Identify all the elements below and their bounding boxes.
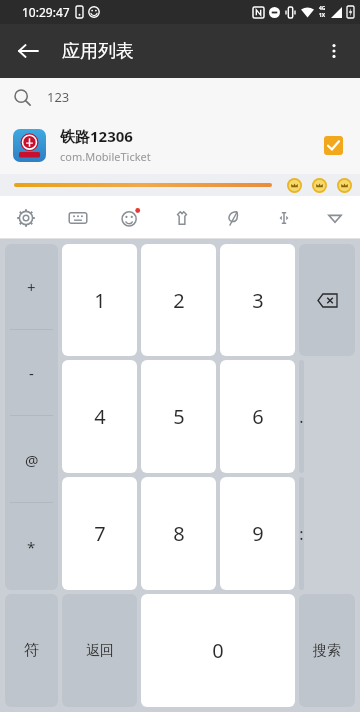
button[interactable]: Coin [337,178,352,193]
button[interactable]: Selected [318,130,348,160]
button[interactable]: : [299,477,304,590]
staticText: 0 [212,637,224,664]
button[interactable]: Theme [156,196,207,239]
staticText: 6 [252,403,264,430]
staticText: 123 [47,88,70,106]
button[interactable]: 符 [5,594,58,707]
button[interactable]: Coin [287,178,302,193]
button[interactable]: 9 [220,477,295,590]
staticText: 1X [319,12,326,19]
staticText: 5 [173,403,185,430]
button[interactable]: Backspace [299,244,355,356]
staticText: 7 [94,520,106,547]
staticText: 2 [173,287,185,314]
button[interactable]: 0 [141,594,295,707]
button[interactable]: Settings [0,196,52,239]
button[interactable]: Handwriting [207,196,258,239]
staticText: 8 [173,520,185,547]
staticText: 9 [252,520,264,547]
staticText: 4 [94,403,106,430]
button[interactable]: 3 [220,244,295,356]
button[interactable]: Coin [312,178,327,193]
button[interactable]: 123 [0,78,360,116]
button[interactable]: 返回 [62,594,137,707]
staticText: 搜索 [313,642,341,660]
button[interactable]: Emoji [104,196,156,239]
staticText: - [29,363,34,383]
button[interactable]: More options [312,29,356,73]
button[interactable]: Keyboard [52,196,104,239]
button[interactable]: 2 [141,244,216,356]
staticText: 符 [24,641,39,660]
button[interactable]: Collapse [309,196,360,239]
staticText: 铁路12306 [60,126,133,146]
button[interactable]: 搜索 [299,594,355,707]
button[interactable]: + [5,244,58,330]
button[interactable]: 8 [141,477,216,590]
button[interactable]: Back [6,29,50,73]
button[interactable]: 铁路12306 [0,116,360,174]
button[interactable]: . [299,360,304,473]
staticText: . [299,406,304,428]
staticText: * [27,537,36,557]
staticText: 3 [252,287,264,314]
button[interactable]: 4 [62,360,137,473]
button[interactable]: 6 [220,360,295,473]
staticText: 应用列表 [62,40,134,63]
button[interactable]: 1 [62,244,137,356]
staticText: 1 [94,287,106,314]
staticText: @ [25,450,39,470]
staticText: 10:29:47 [22,4,70,20]
staticText: com.MobileTicket [60,149,151,164]
button[interactable]: 5 [141,360,216,473]
staticText: : [299,523,304,545]
staticText: 4G [319,5,326,12]
button[interactable]: * [5,503,58,590]
button[interactable]: @ [5,416,58,503]
button[interactable]: Cursor [258,196,309,239]
button[interactable]: 7 [62,477,137,590]
staticText: + [27,277,36,297]
staticText: 返回 [86,642,114,660]
button[interactable]: - [5,330,58,416]
